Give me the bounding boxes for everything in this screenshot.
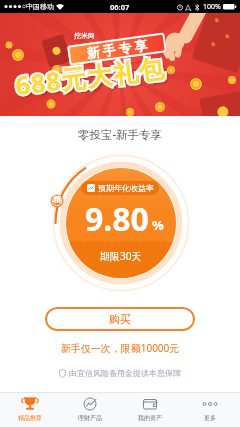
staticText: 更多 [204,414,216,422]
staticText: 期限30天 [100,249,142,263]
staticText: 9.80 [85,197,149,241]
staticText: 购买 [109,312,131,326]
staticText: 中国移动 [26,2,54,11]
staticText: 零投宝-新手专享 [0,127,240,143]
staticText: 新手专享 [84,37,150,61]
staticText: 理财产品 [78,414,102,422]
staticText: 挖米网 [74,31,95,40]
button[interactable]: 挖米网 [0,13,240,116]
button[interactable]: 理财产品 [60,393,120,427]
staticText: 精 [50,195,64,209]
staticText: 我的资产 [138,414,162,422]
button[interactable]: 精品推荐 [0,393,60,427]
staticText: 预期年化收益率 [98,183,154,193]
button[interactable]: 购买 [45,307,195,331]
staticText: 由宜信风险备用金提供本息保障 [69,368,181,378]
staticText: 新手仅一次，限额10000元 [0,341,240,355]
button[interactable]: 更多 [180,393,240,427]
staticText: 06:07 [110,2,130,12]
staticText: 688元大礼包 [13,50,166,102]
staticText: 688元大礼包 [13,50,166,102]
button[interactable]: 我的资产 [120,393,180,427]
button[interactable]: 精 [45,147,197,299]
staticText: % [152,216,164,234]
staticText: 100% [203,2,221,12]
staticText: 精品推荐 [18,414,42,422]
